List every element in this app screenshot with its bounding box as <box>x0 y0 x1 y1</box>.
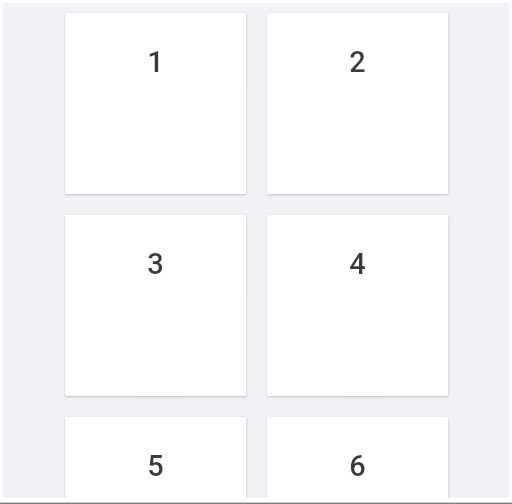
staticText: 5 <box>147 449 164 483</box>
button[interactable]: 6 <box>267 417 448 498</box>
staticText: 2 <box>349 45 366 79</box>
button[interactable]: 4 <box>267 215 448 396</box>
staticText: 3 <box>147 247 164 281</box>
button[interactable]: 1 <box>65 13 246 194</box>
staticText: 1 <box>147 45 164 79</box>
button[interactable]: 2 <box>267 13 448 194</box>
staticText: 6 <box>349 449 366 483</box>
staticText: 4 <box>349 247 366 281</box>
button[interactable]: 3 <box>65 215 246 396</box>
button[interactable]: 5 <box>65 417 246 498</box>
